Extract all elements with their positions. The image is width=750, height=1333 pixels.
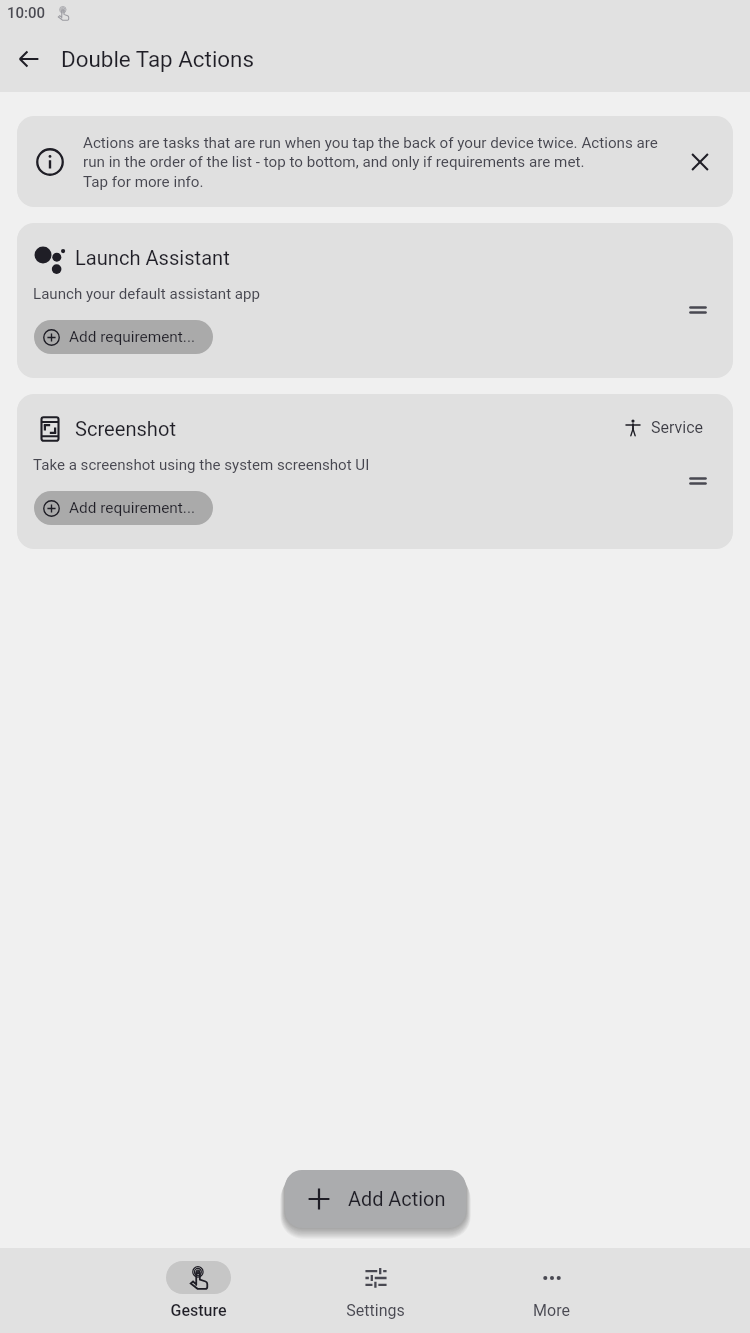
staticText: Settings: [346, 1301, 405, 1320]
button[interactable]: Gesture: [110, 1248, 286, 1333]
staticText: Add Action: [348, 1188, 446, 1211]
staticText: Actions are tasks that are run when you …: [83, 134, 668, 191]
button[interactable]: Add requirement...: [34, 491, 213, 525]
staticText: Add requirement...: [69, 499, 196, 517]
staticText: Service: [651, 418, 704, 437]
button[interactable]: Settings: [287, 1248, 464, 1333]
button[interactable]: Actions are tasks that are run when you …: [17, 116, 733, 207]
button[interactable]: More: [463, 1248, 640, 1333]
staticText: More: [533, 1301, 570, 1320]
staticText: Gesture: [170, 1301, 227, 1320]
button[interactable]: Reorder: [676, 288, 720, 332]
button[interactable]: Reorder: [676, 459, 720, 503]
staticText: Add requirement...: [69, 328, 196, 346]
staticText: Launch Assistant: [75, 246, 230, 270]
button[interactable]: Back: [5, 35, 53, 83]
button[interactable]: Add requirement...: [34, 320, 213, 354]
staticText: 10:00: [7, 4, 46, 22]
staticText: Launch your default assistant app: [33, 285, 260, 303]
staticText: Double Tap Actions: [61, 46, 255, 72]
staticText: Screenshot: [75, 417, 176, 441]
staticText: Take a screenshot using the system scree…: [33, 456, 370, 474]
button[interactable]: Screenshot: [17, 394, 733, 549]
button[interactable]: Launch Assistant: [17, 223, 733, 378]
button[interactable]: Add Action: [285, 1170, 466, 1228]
button[interactable]: Dismiss: [678, 140, 722, 184]
